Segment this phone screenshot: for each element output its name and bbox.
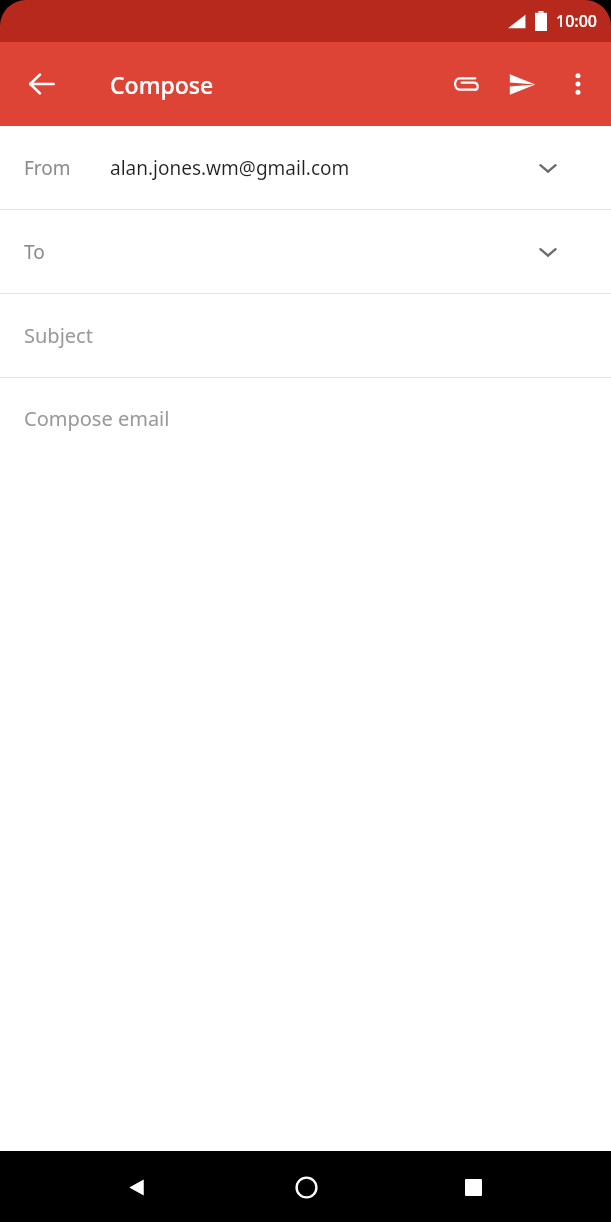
button[interactable]: Recent apps xyxy=(445,1159,501,1215)
button[interactable]: Back xyxy=(108,1159,164,1215)
button[interactable]: Send xyxy=(494,56,550,112)
button[interactable]: Home xyxy=(278,1159,334,1215)
button[interactable]: Back xyxy=(14,56,70,112)
staticText: Compose xyxy=(110,69,214,100)
staticText: Subject xyxy=(24,322,93,349)
staticText: From xyxy=(24,155,71,181)
button[interactable]: More options xyxy=(550,56,606,112)
staticText: 10:00 xyxy=(556,10,597,32)
staticText: Compose email xyxy=(24,405,170,432)
button[interactable]: To xyxy=(0,210,611,293)
staticText: To xyxy=(24,239,45,265)
button[interactable]: Compose email xyxy=(0,378,611,1151)
button[interactable]: Attach file xyxy=(438,56,494,112)
button[interactable]: Subject xyxy=(0,294,611,377)
button[interactable]: Expand xyxy=(526,146,570,190)
staticText: alan.jones.wm@gmail.com xyxy=(110,155,350,181)
button[interactable]: Expand xyxy=(526,230,570,274)
button[interactable]: From xyxy=(0,126,611,209)
